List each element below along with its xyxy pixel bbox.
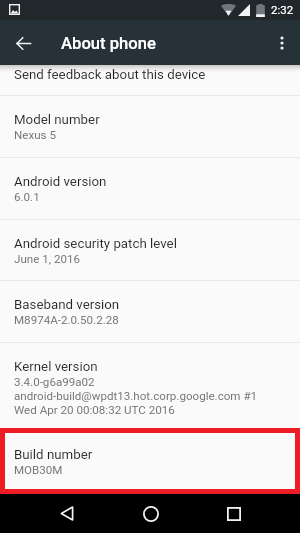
- button[interactable]: Recents: [217, 497, 250, 530]
- button[interactable]: Build number: [0, 428, 300, 494]
- staticText: 3.4.0-g6a99a02: [14, 375, 95, 389]
- other: Wi-Fi: [221, 4, 236, 16]
- button[interactable]: Baseband version: [0, 281, 300, 342]
- button[interactable]: Android version: [0, 158, 300, 219]
- staticText: 6.0.1: [14, 190, 40, 204]
- button[interactable]: More options: [264, 25, 300, 61]
- button[interactable]: Android security patch level: [0, 220, 300, 280]
- staticText: Send feedback about this device: [14, 67, 206, 83]
- button[interactable]: Model number: [0, 96, 300, 157]
- other: Mobile signal: [238, 4, 250, 16]
- staticText: Android security patch level: [14, 236, 177, 252]
- staticText: Android version: [14, 174, 107, 190]
- other: Battery: [256, 4, 265, 17]
- staticText: 2:32: [271, 3, 294, 16]
- staticText: About phone: [61, 34, 156, 53]
- button[interactable]: Send feedback about this device: [0, 65, 300, 95]
- staticText: June 1, 2016: [14, 252, 80, 266]
- staticText: MOB30M: [14, 463, 63, 477]
- button[interactable]: Navigate up: [5, 25, 41, 61]
- button[interactable]: Kernel version: [0, 343, 300, 428]
- button[interactable]: Home: [134, 497, 167, 530]
- staticText: Nexus 5: [14, 128, 56, 142]
- staticText: Wed Apr 20 00:08:32 UTC 2016: [14, 403, 175, 417]
- staticText: Baseband version: [14, 297, 120, 313]
- staticText: Build number: [14, 447, 93, 463]
- staticText: Kernel version: [14, 359, 98, 375]
- staticText: Model number: [14, 112, 100, 128]
- staticText: android-build@wpdt13.hot.corp.google.com…: [14, 389, 258, 403]
- button[interactable]: Back: [50, 497, 83, 530]
- staticText: M8974A-2.0.50.2.28: [14, 313, 119, 327]
- other: Screenshot saved: [9, 4, 20, 15]
